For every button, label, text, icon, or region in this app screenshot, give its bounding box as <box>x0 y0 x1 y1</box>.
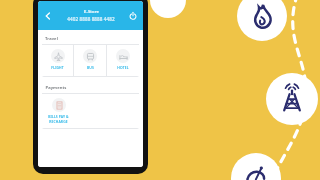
button[interactable]: FLIGHT <box>42 45 73 76</box>
staticText: BILLS PAY & <box>48 114 69 119</box>
staticText: 4402 8888 8888 4482 <box>67 16 115 22</box>
button[interactable]: Gas <box>237 0 287 41</box>
staticText: Payments <box>45 85 67 91</box>
button[interactable]: Mobile network <box>266 73 318 125</box>
button[interactable]: Back <box>41 9 55 23</box>
button[interactable]: HOTEL <box>107 45 139 76</box>
staticText: RECHARGE <box>49 119 68 124</box>
button[interactable]: Satellite <box>231 153 281 180</box>
button[interactable]: BUS <box>74 45 106 76</box>
staticText: HOTEL <box>117 65 129 70</box>
staticText: Travel <box>45 36 58 42</box>
button[interactable]: Power <box>126 9 140 23</box>
staticText: BUS <box>87 65 94 70</box>
staticText: FLIGHT <box>51 65 64 70</box>
button[interactable]: BILLS PAY & <box>42 94 75 128</box>
staticText: E-Store <box>84 9 99 15</box>
